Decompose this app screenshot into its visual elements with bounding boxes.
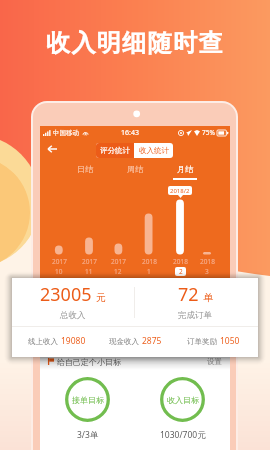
staticText: 中国移动	[53, 129, 79, 137]
staticText: 3/3单	[77, 429, 99, 441]
staticText: 线上收入	[28, 337, 58, 346]
staticText: 1	[147, 267, 151, 276]
staticText: 收入明细随时查	[46, 28, 224, 58]
staticText: 单	[203, 291, 213, 304]
button[interactable]: 72	[134, 278, 256, 326]
button[interactable]: 现金收入	[96, 335, 174, 347]
staticText: 接单目标	[72, 395, 104, 405]
staticText: 2018	[142, 257, 157, 266]
staticText: 10	[55, 267, 63, 276]
staticText: 总收入	[60, 310, 86, 321]
staticText: 元	[96, 291, 106, 304]
button[interactable]: 给自己定个小目标	[48, 354, 222, 369]
button[interactable]: 23005	[12, 278, 134, 326]
staticText: 2875	[142, 335, 162, 347]
staticText: 月结	[177, 164, 193, 174]
button[interactable]: 订单奖励	[174, 335, 252, 347]
staticText: 完成订单	[178, 310, 212, 321]
staticText: 11	[85, 267, 93, 276]
staticText: 收入目标	[167, 395, 199, 405]
staticText: 2	[179, 267, 183, 276]
staticText: 周结	[127, 164, 143, 174]
button[interactable]: 月结	[165, 164, 205, 184]
staticText: 2018	[173, 257, 188, 266]
staticText: 2017	[82, 257, 97, 266]
button[interactable]: Back	[44, 141, 60, 157]
button[interactable]: 日结	[65, 164, 105, 184]
staticText: 1050	[220, 335, 240, 347]
staticText: 72	[178, 282, 199, 307]
button[interactable]: 接单目标	[40, 369, 135, 450]
staticText: 收入统计	[139, 146, 169, 155]
staticText: 2017	[52, 257, 67, 266]
staticText: 1030/700元	[160, 429, 206, 441]
staticText: 设置	[207, 357, 222, 366]
staticText: 19080	[61, 335, 86, 347]
staticText: 12	[114, 267, 122, 276]
staticText: 23005	[40, 282, 92, 307]
button[interactable]: 评分统计	[96, 143, 134, 158]
staticText: 2018/2	[170, 187, 190, 195]
staticText: 日结	[77, 164, 93, 174]
staticText: 2017	[111, 257, 126, 266]
staticText: 给自己定个小目标	[57, 357, 121, 367]
staticText: 评分统计	[100, 146, 130, 155]
button[interactable]: 周结	[115, 164, 155, 184]
button[interactable]: 收入统计	[134, 143, 173, 158]
staticText: 16:43	[121, 128, 139, 138]
staticText: 订单奖励	[187, 337, 217, 346]
button[interactable]: 收入目标	[135, 369, 230, 450]
staticText: 2018	[200, 257, 215, 266]
staticText: 75%	[202, 128, 215, 137]
button[interactable]: 线上收入	[18, 335, 96, 347]
staticText: 现金收入	[109, 337, 139, 346]
staticText: 3	[205, 267, 209, 276]
